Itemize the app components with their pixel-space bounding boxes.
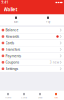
button[interactable]: Settings [0, 66, 64, 72]
staticText: Cards [5, 41, 14, 45]
staticText: Home [5, 96, 11, 99]
staticText: Settings [5, 66, 18, 71]
staticText: Coupons [5, 60, 19, 65]
staticText: Wallet [4, 6, 18, 12]
button[interactable]: Balance [0, 27, 64, 33]
button[interactable]: Payments [0, 53, 64, 59]
staticText: Balance [5, 28, 18, 32]
staticText: Transfers [5, 47, 20, 52]
staticText: Scan [13, 20, 18, 23]
button[interactable]: Rewards [0, 33, 64, 40]
staticText: Me [54, 96, 57, 99]
staticText: Payments [5, 54, 21, 58]
button[interactable]: Me [48, 93, 64, 99]
button[interactable]: Home [0, 93, 16, 99]
button[interactable]: Scan [0, 16, 32, 23]
staticText: Shop [38, 96, 42, 99]
staticText: Pay [46, 20, 50, 23]
button[interactable]: Transfers [0, 46, 64, 53]
staticText: 9:41 [1, 1, 8, 4]
staticText: 3 new [50, 60, 59, 64]
button[interactable]: Cards [0, 40, 64, 46]
button[interactable]: Pay [32, 16, 64, 23]
button[interactable]: Shop [32, 93, 48, 99]
button[interactable]: Coupons [0, 59, 64, 65]
staticText: Cards [21, 96, 27, 99]
staticText: Rewards [5, 34, 19, 39]
button[interactable]: Cards [16, 93, 32, 99]
